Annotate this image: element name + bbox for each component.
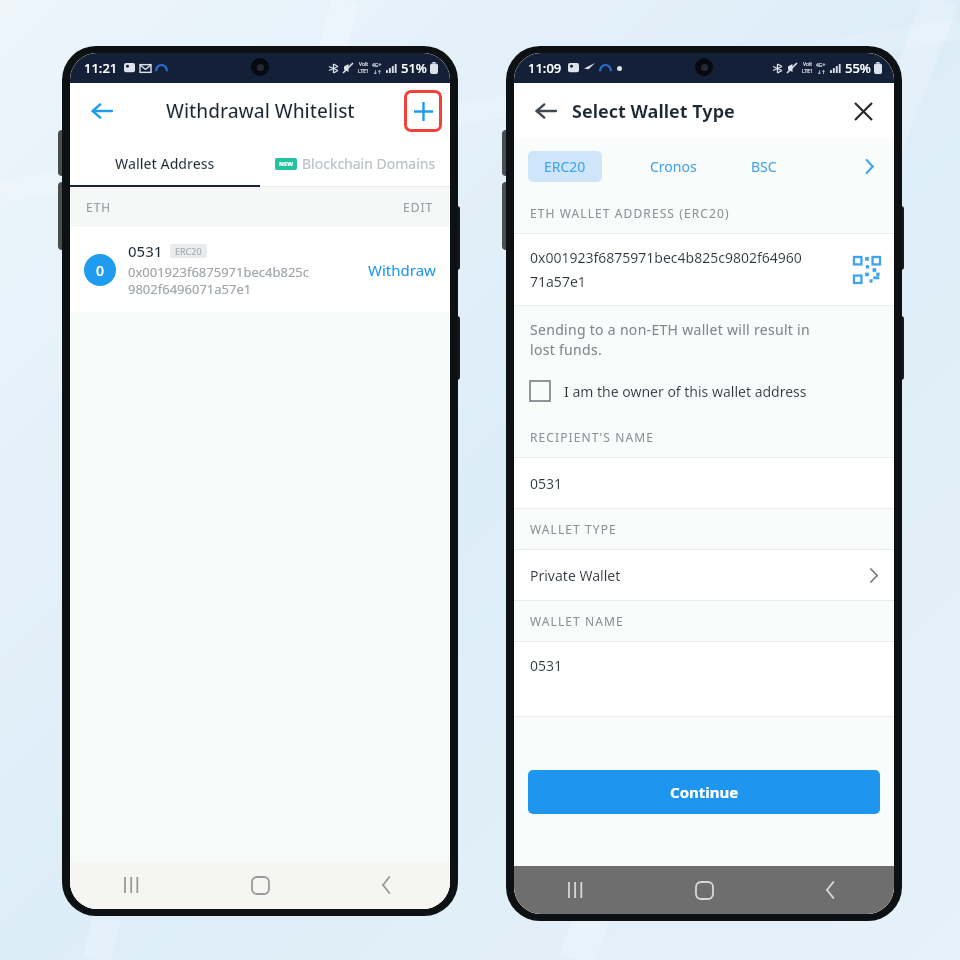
- button[interactable]: Scan QR code: [854, 257, 880, 283]
- staticText: Cronos: [650, 157, 697, 176]
- staticText: ↓↑: [817, 69, 826, 75]
- staticText: ERC20: [175, 245, 202, 257]
- button[interactable]: BSC: [745, 151, 783, 182]
- button[interactable]: Home: [680, 866, 728, 914]
- staticText: 0531: [530, 656, 563, 675]
- staticText: Withdraw: [368, 260, 436, 280]
- button[interactable]: Back: [807, 866, 855, 914]
- button[interactable]: Add: [404, 90, 442, 132]
- button[interactable]: Recents: [109, 861, 157, 909]
- button[interactable]: Back: [363, 861, 411, 909]
- button[interactable]: Close: [844, 92, 882, 130]
- staticText: 4G+: [816, 62, 826, 69]
- staticText: 51%: [401, 59, 427, 77]
- staticText: EDIT: [403, 199, 434, 215]
- button[interactable]: EDIT: [403, 199, 434, 215]
- button[interactable]: Continue: [528, 770, 880, 814]
- button[interactable]: Back: [526, 91, 566, 131]
- button[interactable]: Recents: [553, 866, 601, 914]
- button[interactable]: Back: [82, 91, 122, 131]
- staticText: Wallet Address: [115, 154, 215, 173]
- staticText: ERC20: [544, 157, 586, 176]
- staticText: ETH: [86, 199, 112, 215]
- staticText: Volt: [359, 61, 369, 68]
- button[interactable]: NEW: [260, 139, 450, 187]
- staticText: Volt: [803, 61, 813, 68]
- staticText: 55%: [845, 59, 871, 77]
- staticText: WALLET TYPE: [530, 521, 617, 537]
- button[interactable]: I am the owner of this wallet address: [514, 381, 894, 417]
- button[interactable]: ERC20: [528, 151, 602, 182]
- staticText: 0x001923f6875971bec4b825c 9802f6496071a5…: [128, 263, 309, 298]
- staticText: 0531: [128, 241, 163, 261]
- staticText: Withdrawal Whitelist: [166, 98, 355, 124]
- staticText: ETH WALLET ADDRESS (ERC20): [530, 205, 730, 221]
- button[interactable]: Wallet Address: [70, 139, 260, 187]
- button[interactable]: More chains: [854, 151, 884, 181]
- staticText: LTE1: [358, 68, 369, 75]
- staticText: I am the owner of this wallet address: [564, 382, 807, 401]
- staticText: 0x001923f6875971bec4b825c9802f64960 71a5…: [530, 248, 854, 291]
- button[interactable]: 0x001923f6875971bec4b825c9802f64960 71a5…: [514, 234, 894, 305]
- staticText: Private Wallet: [530, 566, 867, 585]
- button[interactable]: Private Wallet: [514, 550, 894, 600]
- staticText: 0: [96, 261, 105, 280]
- staticText: Sending to a non-ETH wallet will result …: [530, 320, 810, 359]
- staticText: NEW: [279, 160, 294, 168]
- staticText: ↓↑: [373, 69, 382, 75]
- staticText: LTE1: [802, 68, 813, 75]
- staticText: 11:21: [84, 59, 118, 77]
- staticText: 4G+: [372, 62, 382, 69]
- staticText: RECIPIENT'S NAME: [530, 429, 654, 445]
- staticText: BSC: [751, 157, 777, 176]
- staticText: WALLET NAME: [530, 613, 624, 629]
- button[interactable]: Home: [236, 861, 284, 909]
- staticText: Continue: [670, 782, 739, 802]
- staticText: Blockchain Domains: [302, 154, 436, 173]
- staticText: Select Wallet Type: [572, 99, 735, 124]
- staticText: 0531: [530, 474, 563, 493]
- staticText: 11:09: [528, 59, 562, 77]
- button[interactable]: 0531: [514, 458, 894, 508]
- button[interactable]: 0: [70, 227, 450, 312]
- button[interactable]: Cronos: [644, 151, 703, 182]
- button[interactable]: Withdraw: [368, 260, 436, 280]
